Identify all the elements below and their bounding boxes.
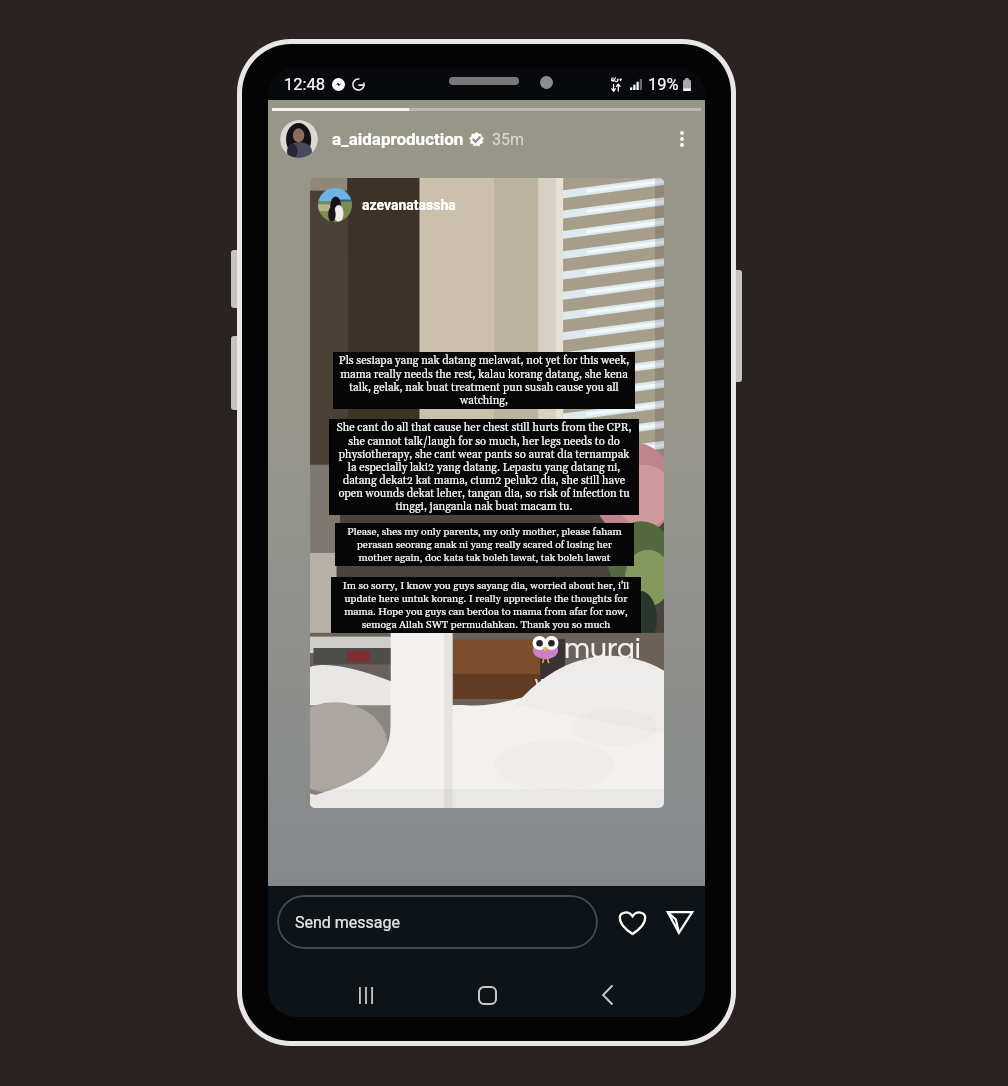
- button[interactable]: Send message: [277, 895, 598, 949]
- staticText: Im so sorry, I know you guys sayang dia,…: [335, 579, 637, 631]
- button[interactable]: Profile photo: [280, 120, 318, 158]
- staticText: 12:48: [284, 75, 326, 94]
- button[interactable]: Like: [616, 906, 648, 938]
- staticText: 35m: [492, 130, 525, 149]
- button[interactable]: More options: [669, 126, 695, 152]
- staticText: azevanatassha: [362, 197, 456, 213]
- staticText: murai: [564, 633, 641, 664]
- button[interactable]: azevanatassha profile: [318, 188, 352, 222]
- button[interactable]: Home: [465, 973, 509, 1017]
- staticText: www.murai.my: [535, 673, 664, 694]
- button[interactable]: Back: [585, 973, 629, 1017]
- staticText: Send message: [295, 913, 401, 932]
- staticText: 19%: [648, 75, 679, 94]
- staticText: Please, shes my only parents, my only mo…: [339, 525, 630, 564]
- button[interactable]: Recents: [344, 973, 388, 1017]
- staticText: She cant do all that cause her chest sti…: [333, 421, 635, 513]
- button[interactable]: Share: [664, 906, 696, 938]
- staticText: Pls sesiapa yang nak datang melawat, not…: [337, 354, 631, 407]
- staticText: a_aidaproduction: [332, 129, 464, 149]
